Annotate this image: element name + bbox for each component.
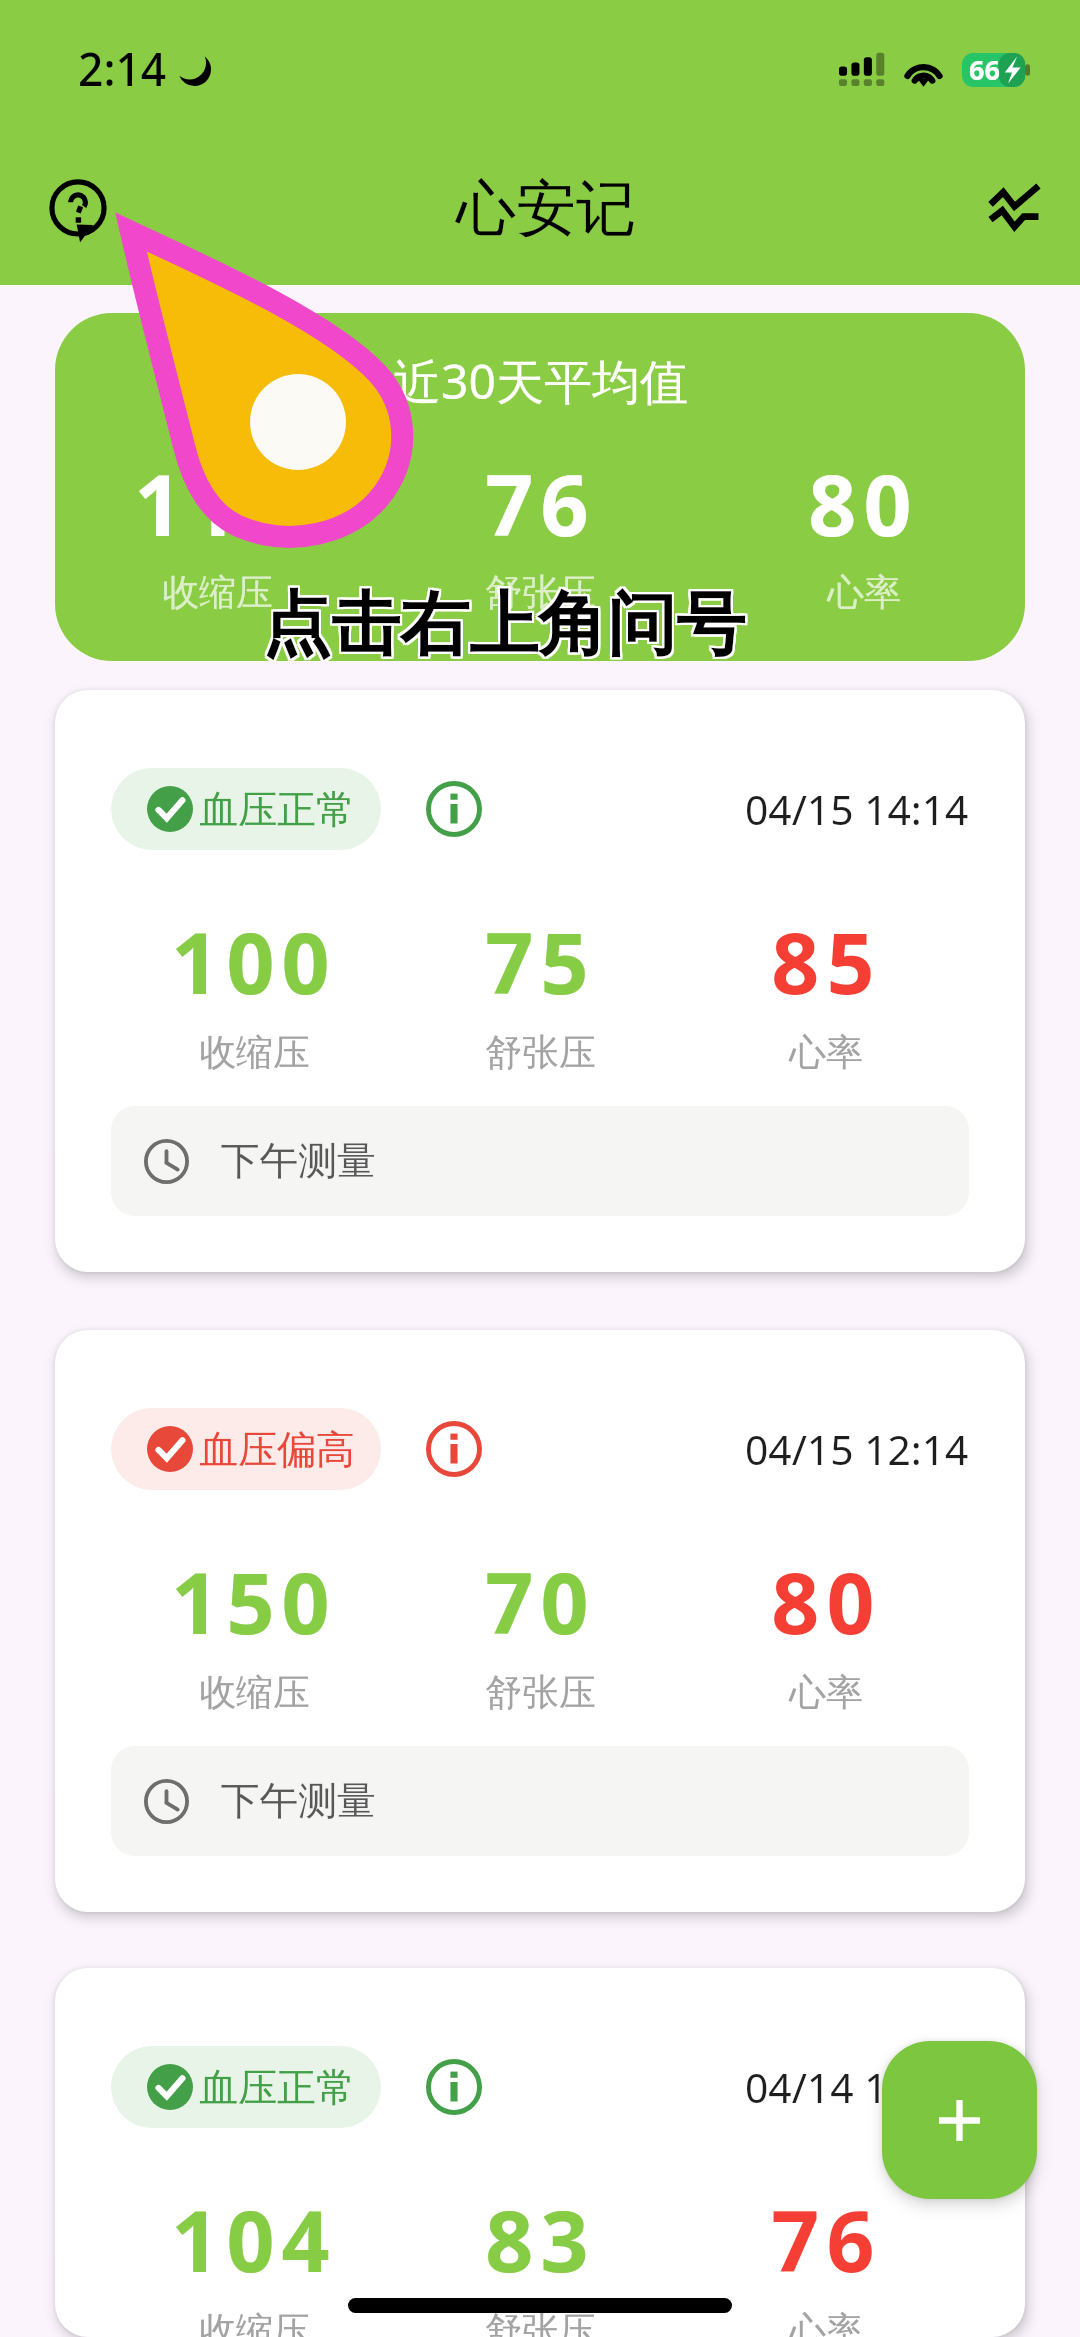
staticText: 血压正常 <box>199 2063 355 2112</box>
staticText: 心率 <box>789 1669 863 1715</box>
staticText: 心率 <box>789 1029 863 1075</box>
staticText: 收缩压 <box>162 569 273 615</box>
staticText: 66 <box>969 51 1000 88</box>
staticText: 收缩压 <box>199 1029 310 1075</box>
staticText: 80 <box>771 1544 882 1658</box>
staticText: 心率 <box>789 2307 863 2337</box>
button[interactable]: 下午测量 <box>111 1106 969 1216</box>
staticText: 04/15 12:14 <box>745 1421 969 1477</box>
staticText: 血压正常 <box>199 785 355 834</box>
button[interactable]: Info <box>413 768 495 850</box>
button[interactable]: 近30天平均值 <box>55 313 1025 661</box>
button[interactable]: 血压正常 <box>111 2046 381 2128</box>
staticText: 点击右上角问号 <box>260 582 743 669</box>
staticText: 心安记 <box>456 171 636 247</box>
staticText: 血压偏高 <box>199 1425 355 1474</box>
staticText: 舒张压 <box>485 1669 596 1715</box>
staticText: 2:14 <box>78 39 167 99</box>
staticText: 点击右上角问号 <box>262 582 745 669</box>
staticText: 85 <box>771 904 882 1018</box>
button[interactable]: Info <box>413 2046 495 2128</box>
staticText: 舒张压 <box>485 1029 596 1075</box>
staticText: 舒张压 <box>485 2307 596 2337</box>
staticText: 75 <box>485 904 596 1018</box>
button[interactable]: 血压正常 <box>111 768 381 850</box>
staticText: 04/14 16:14 <box>745 2059 969 2115</box>
button[interactable]: 血压偏高 <box>55 1330 1025 1912</box>
staticText: 近30天平均值 <box>393 348 688 414</box>
staticText: 100 <box>171 904 337 1018</box>
staticText: 83 <box>485 2182 596 2296</box>
staticText: 点击右上角问号 <box>262 584 745 671</box>
staticText: 收缩压 <box>199 2307 310 2337</box>
staticText: 点击右上角问号 <box>260 580 743 667</box>
staticText: 76 <box>771 2182 882 2296</box>
staticText: 80 <box>808 446 919 560</box>
staticText: 104 <box>171 2182 337 2296</box>
staticText: 70 <box>485 1544 596 1658</box>
staticText: 150 <box>171 1544 337 1658</box>
button[interactable]: 下午测量 <box>111 1746 969 1856</box>
staticText: 下午测量 <box>221 1137 376 1186</box>
staticText: 点击右上角问号 <box>264 582 747 669</box>
staticText: 点击右上角问号 <box>264 580 747 667</box>
button[interactable]: 血压正常 <box>55 1968 1025 2337</box>
button[interactable]: Trends <box>951 146 1077 272</box>
staticText: 04/15 14:14 <box>745 781 969 837</box>
staticText: 舒张压 <box>485 569 596 615</box>
button[interactable]: Add record <box>882 2041 1037 2199</box>
staticText: 收缩压 <box>199 1669 310 1715</box>
staticText: 下午测量 <box>221 1777 376 1826</box>
staticText: 119 <box>134 446 300 560</box>
staticText: 心率 <box>827 569 901 615</box>
button[interactable]: Help <box>15 146 141 272</box>
staticText: 点击右上角问号 <box>262 580 745 667</box>
button[interactable]: 血压正常 <box>55 690 1025 1272</box>
button[interactable]: Info <box>413 1408 495 1490</box>
staticText: 点击右上角问号 <box>260 584 743 671</box>
staticText: 76 <box>485 446 596 560</box>
button[interactable]: 血压偏高 <box>111 1408 381 1490</box>
staticText: 点击右上角问号 <box>264 584 747 671</box>
